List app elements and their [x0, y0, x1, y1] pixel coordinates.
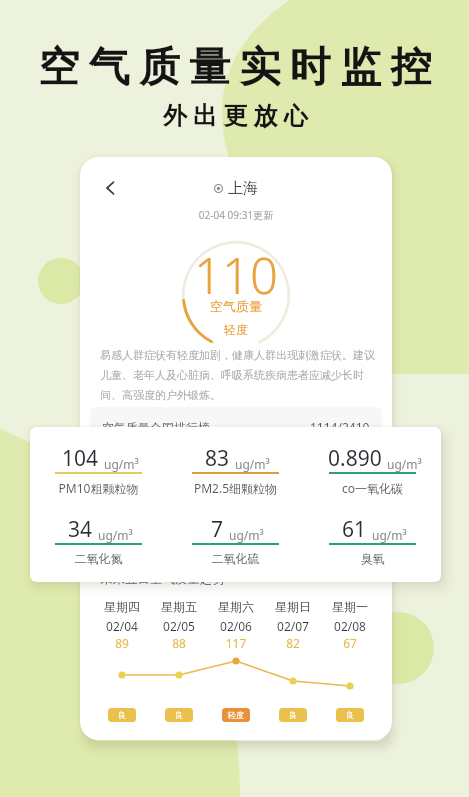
staticText: 02/06	[206, 618, 266, 634]
staticText: ug/m³	[229, 527, 264, 543]
staticText: 34	[68, 515, 93, 544]
staticText: 82	[263, 635, 323, 651]
staticText: ug/m³	[372, 527, 407, 543]
staticText: 星期六	[206, 599, 266, 614]
staticText: ug/m³	[387, 456, 422, 472]
staticText: 星期五	[149, 599, 209, 614]
staticText: 臭氧	[304, 551, 441, 566]
staticText: 空气质量全国排行榜	[102, 420, 210, 435]
button[interactable]: 空气质量全国排行榜	[90, 407, 382, 447]
button[interactable]: 良	[165, 708, 193, 722]
staticText: 星期四	[92, 599, 152, 614]
staticText: ug/m³	[98, 527, 133, 543]
staticText: 二氧化氮	[30, 551, 167, 566]
staticText: 104	[62, 444, 99, 473]
staticText: 02/07	[263, 618, 323, 634]
staticText: 88	[149, 635, 209, 651]
staticText: 良	[346, 710, 354, 720]
staticText: 02-04 09:31更新	[80, 208, 392, 222]
staticText: 110	[182, 242, 290, 309]
staticText: 117	[206, 635, 266, 651]
staticText: 未来五日空气质量趋势	[100, 571, 225, 587]
staticText: 1114/2410	[310, 419, 370, 435]
staticText: 易感人群症状有轻度加剧，健康人群出现刺激症状。建议 儿童、老年人及心脏病、呼吸系…	[100, 348, 375, 403]
staticText: co一氧化碳	[304, 480, 441, 496]
staticText: 02/04	[92, 618, 152, 634]
button[interactable]: 良	[279, 708, 307, 722]
staticText: 外出更放心	[4, 101, 469, 131]
staticText: 二氧化硫	[167, 551, 304, 566]
staticText: PM2.5细颗粒物	[167, 480, 304, 496]
staticText: 02/08	[320, 618, 380, 634]
staticText: 02/05	[149, 618, 209, 634]
staticText: 0.890	[328, 444, 382, 473]
staticText: 空气质量	[182, 298, 290, 314]
button[interactable]: 良	[108, 708, 136, 722]
staticText: 7	[211, 515, 224, 544]
button[interactable]: 良	[336, 708, 364, 722]
staticText: 星期一	[320, 599, 380, 614]
staticText: 上海	[228, 179, 258, 198]
staticText: 轻度	[228, 710, 244, 720]
button[interactable]: 轻度	[222, 708, 250, 722]
staticText: 良	[175, 710, 183, 720]
staticText: 89	[92, 635, 152, 651]
staticText: 67	[320, 635, 380, 651]
staticText: 良	[118, 710, 126, 720]
staticText: ug/m³	[104, 456, 139, 472]
staticText: 空气质量实时监控	[5, 42, 469, 94]
staticText: 良	[289, 710, 297, 720]
staticText: PM10粗颗粒物	[30, 480, 167, 496]
button[interactable]: Back	[101, 178, 121, 198]
staticText: 61	[342, 515, 367, 544]
staticText: 轻度	[182, 322, 290, 337]
staticText: 星期日	[263, 599, 323, 614]
staticText: 83	[205, 444, 230, 473]
staticText: ug/m³	[235, 456, 270, 472]
